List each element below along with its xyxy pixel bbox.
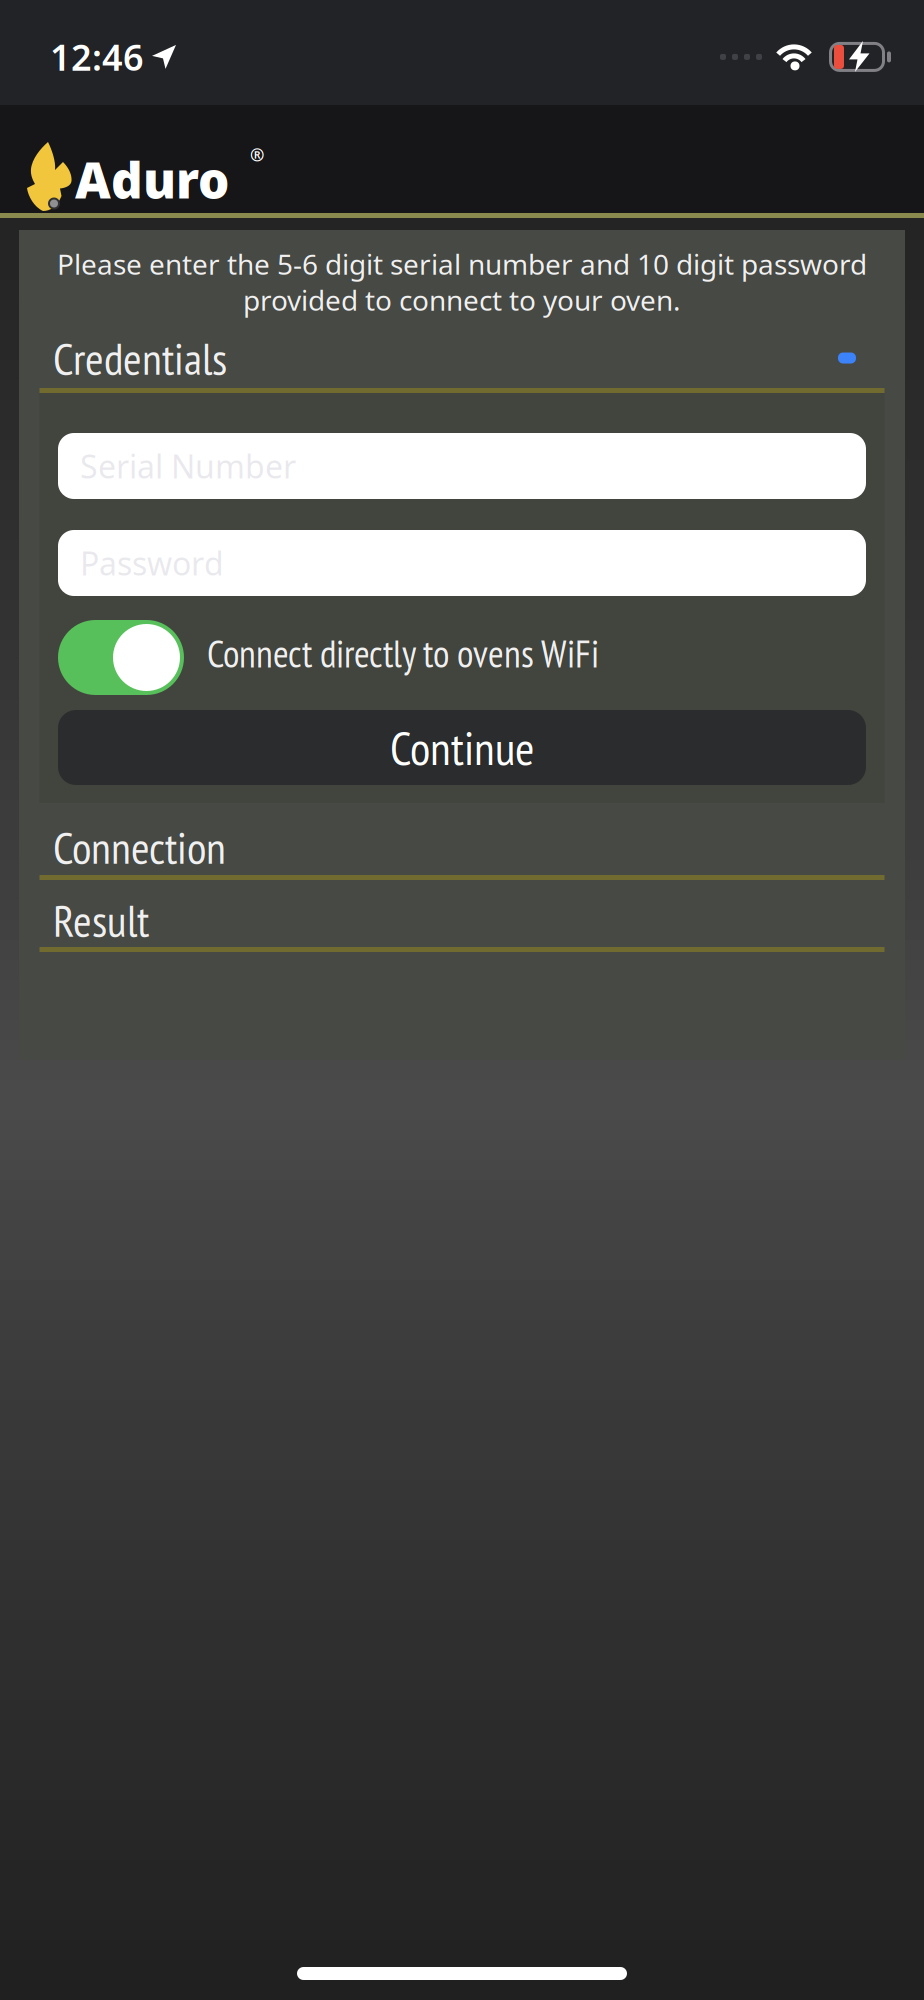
button[interactable]: Connect directly to ovens WiFi	[58, 620, 184, 695]
staticText: Aduro	[75, 146, 229, 212]
button[interactable]: Serial Number	[58, 433, 866, 499]
staticText: Connect directly to ovens WiFi	[207, 629, 599, 678]
staticText: ®	[250, 143, 264, 166]
staticText: Result	[53, 891, 149, 949]
button[interactable]: Connection	[19, 823, 905, 871]
staticText: provided to connect to your oven.	[243, 281, 681, 319]
button[interactable]: Credentials	[19, 334, 905, 382]
staticText: 12:46	[50, 33, 144, 81]
button[interactable]: Password	[58, 530, 866, 596]
button[interactable]: Continue	[58, 710, 866, 785]
staticText: Please enter the 5-6 digit serial number…	[57, 245, 867, 283]
staticText: Password	[80, 542, 224, 584]
staticText: Credentials	[53, 329, 227, 387]
staticText: Serial Number	[80, 445, 296, 487]
button[interactable]: Result	[19, 895, 905, 945]
staticText: Connection	[53, 818, 226, 876]
staticText: Continue	[390, 717, 534, 778]
